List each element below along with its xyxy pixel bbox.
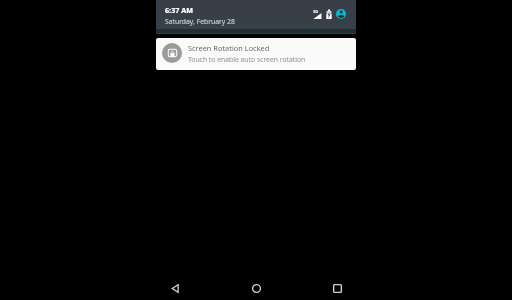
staticText: 3G [313,9,319,14]
button[interactable]: Screen Rotation Locked [156,38,356,70]
staticText: Saturday, February 28 [165,17,235,26]
staticText: 6:37 AM [165,5,193,15]
button[interactable]: Home [226,276,286,300]
staticText: Screen Rotation Locked [188,43,270,53]
button[interactable]: Back [145,276,206,300]
staticText: Touch to enable auto screen rotation [188,55,306,64]
button[interactable]: Recent apps [307,276,367,300]
